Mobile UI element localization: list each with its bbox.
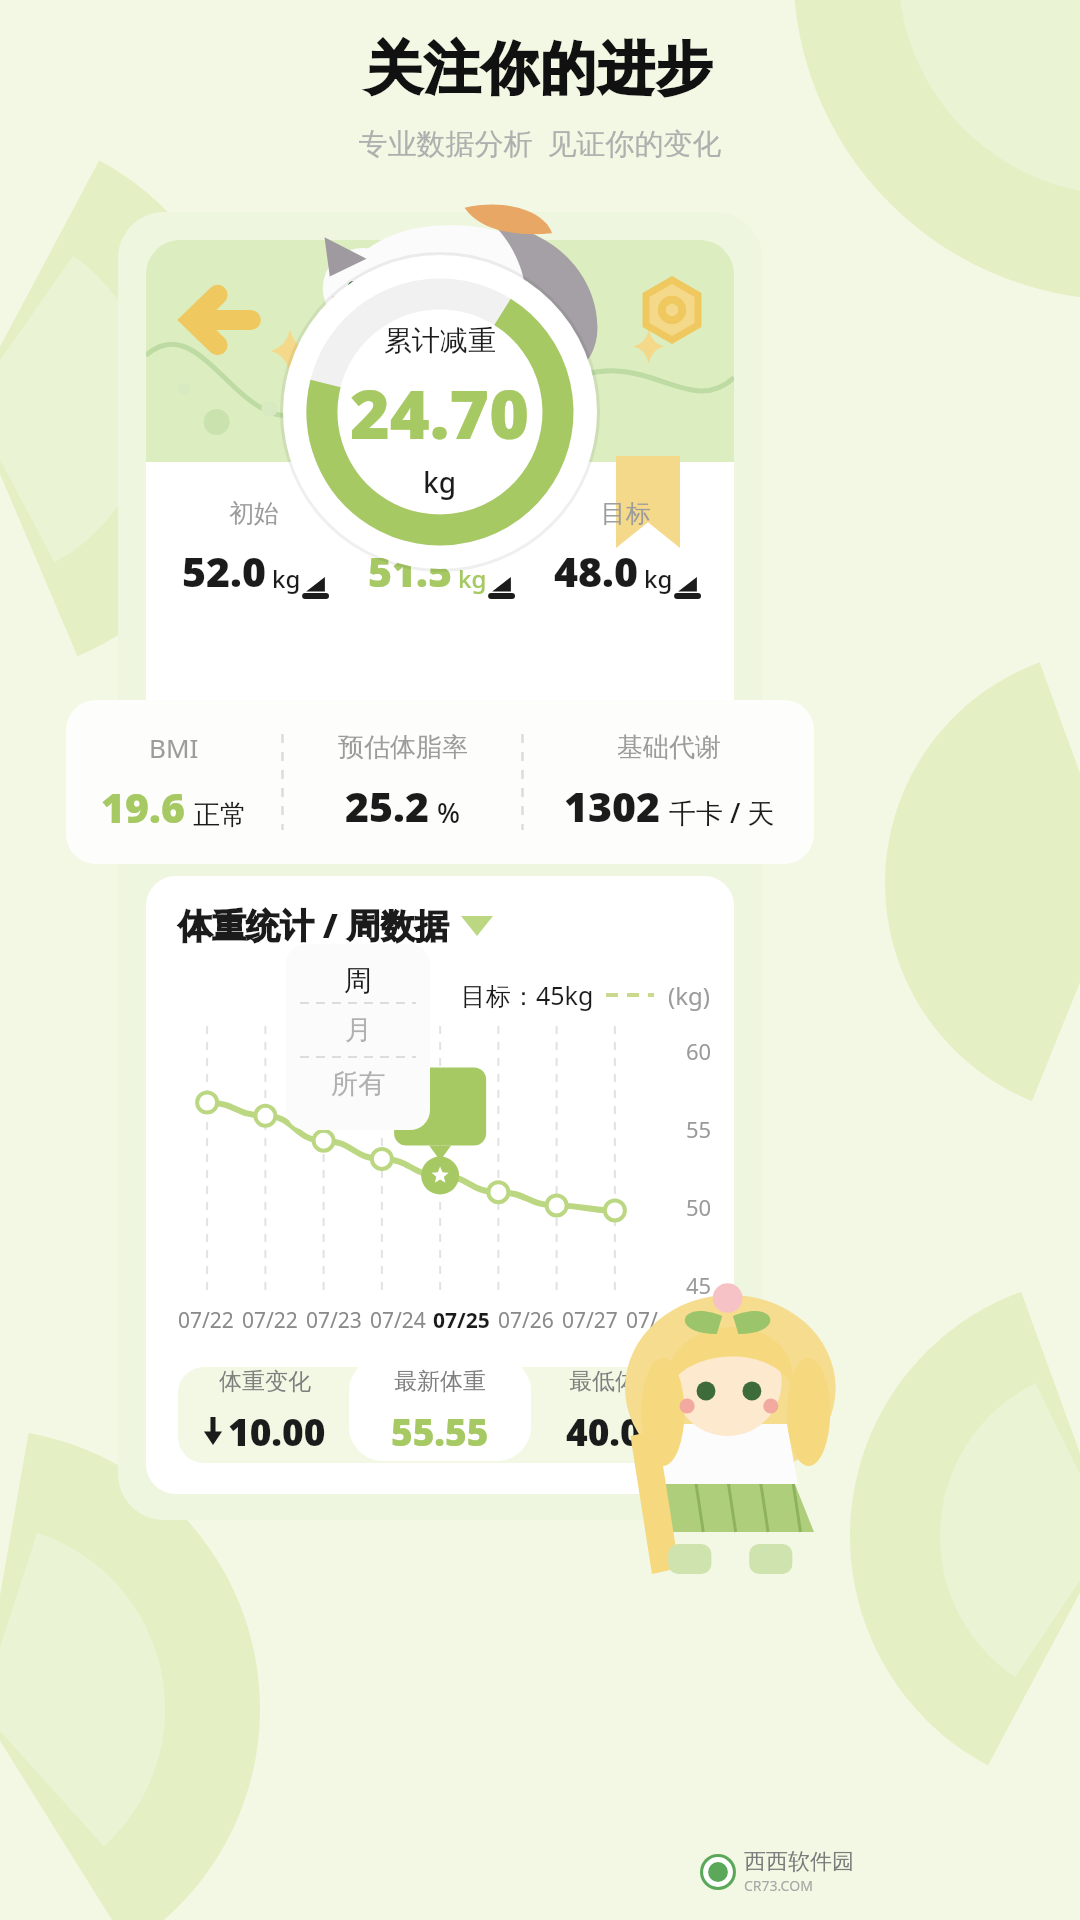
staticText: 50 [686,1192,712,1222]
staticText: 52.0 [182,543,266,599]
staticText: kg [458,562,487,595]
staticText: 月 [345,1013,372,1047]
button[interactable]: 所有 [286,1058,430,1110]
button[interactable]: 当前 [352,492,528,605]
staticText: 最新体重 [394,1367,486,1396]
staticText: 当前 [415,498,465,529]
button[interactable]: BMI [66,722,281,843]
staticText: 07/22 [242,1306,298,1335]
staticText: 07/ [626,1306,658,1335]
button[interactable]: 最新体重 [352,1367,527,1456]
button[interactable]: Back [182,290,256,350]
staticText: 45 [686,1270,712,1300]
staticText: CR73.COM [744,1876,813,1895]
staticText: 07/22 [178,1306,234,1335]
staticText: kg [423,463,457,501]
staticText: kg [644,562,673,595]
staticText: 07/23 [306,1306,362,1335]
staticText: 07/25 [433,1306,490,1335]
staticText: 所有 [331,1067,385,1101]
staticText: 60 [686,1036,712,1066]
staticText: 预估体脂率 [338,731,468,764]
staticText: 正常 [193,798,247,832]
button[interactable]: 周 [286,958,430,1002]
staticText: 55.55 [391,1406,489,1456]
staticText: (kg) [668,979,710,1012]
staticText: 48.0 [554,543,638,599]
button[interactable]: 月 [286,1004,430,1056]
staticText: 07/26 [498,1306,554,1335]
staticText: 千卡 / 天 [669,794,775,831]
staticText: 51.5 [368,543,452,599]
staticText: 最低体重 [569,1367,661,1396]
staticText: 体重变化 [219,1367,311,1396]
button[interactable]: 体重统计 / 周数据 [178,902,493,948]
staticText: 初始 [229,498,279,529]
staticText: 1302 [564,778,661,834]
staticText: 体重统计 / 周数据 [178,902,449,948]
staticText: % [437,794,461,831]
staticText: 07/24 [370,1306,426,1335]
button[interactable]: 预估体脂率 [284,723,521,842]
staticText: 10.00 [228,1406,326,1456]
button[interactable]: 目标 [538,492,714,605]
button[interactable]: 基础代谢 [524,723,814,842]
staticText: 19.6 [101,779,185,835]
button[interactable]: 体重变化 [178,1367,352,1456]
staticText: 07/27 [562,1306,618,1335]
staticText: 40.00 [566,1406,664,1456]
staticText: 目标 [601,498,651,529]
staticText: 累计减重 [384,323,496,358]
button[interactable]: 最低体重 [527,1367,702,1456]
staticText: 西西软件园 [744,1848,854,1876]
button[interactable]: Settings [642,280,702,340]
staticText: 25.2 [345,778,429,834]
staticText: 基础代谢 [617,731,721,764]
staticText: kg [272,562,301,595]
staticText: 目标：45kg [461,978,594,1012]
staticText: 专业数据分析 见证你的变化 [0,123,1080,163]
staticText: 55 [686,1114,712,1144]
staticText: 周 [344,963,372,998]
button[interactable]: 初始 [166,492,342,605]
staticText: 关注你的进步 [0,34,1080,105]
staticText: 24.70 [350,366,530,459]
button[interactable]: Bookmark [616,456,680,548]
staticText: BMI [149,730,199,765]
button[interactable]: 西西软件园 [700,1848,854,1895]
